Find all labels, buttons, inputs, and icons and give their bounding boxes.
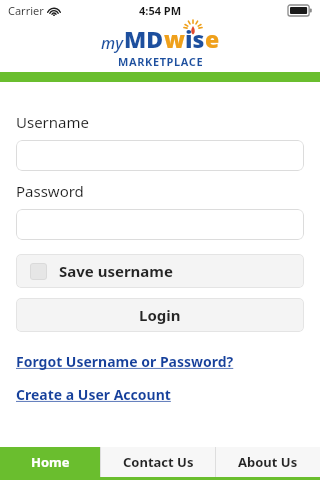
staticText: Create a User Account bbox=[16, 385, 171, 404]
staticText: Username bbox=[16, 112, 89, 132]
staticText: 4:54 PM bbox=[139, 3, 182, 18]
staticText: my bbox=[101, 32, 123, 54]
staticText: Password bbox=[16, 181, 84, 201]
button[interactable] bbox=[16, 140, 304, 171]
staticText: Forgot Username or Password? bbox=[16, 352, 234, 371]
button[interactable]: Create a User Account bbox=[16, 385, 171, 404]
button[interactable]: Contact Us bbox=[101, 447, 215, 477]
staticText: e bbox=[205, 23, 220, 54]
staticText: is bbox=[185, 23, 205, 54]
staticText: Home bbox=[31, 453, 70, 471]
button[interactable]: Login bbox=[16, 298, 304, 332]
staticText: w bbox=[164, 23, 185, 54]
button[interactable]: About Us bbox=[216, 447, 320, 477]
button[interactable]: Save username bbox=[16, 254, 304, 288]
staticText: Carrier bbox=[8, 3, 44, 18]
staticText: Save username bbox=[59, 261, 173, 281]
button[interactable]: Forgot Username or Password? bbox=[16, 352, 234, 371]
staticText: Contact Us bbox=[123, 453, 194, 471]
staticText: MD bbox=[124, 23, 164, 54]
staticText: MARKETPLACE bbox=[118, 54, 204, 69]
staticText: About Us bbox=[238, 453, 298, 471]
staticText: Login bbox=[139, 305, 181, 325]
button[interactable]: Home bbox=[0, 447, 100, 477]
button[interactable] bbox=[16, 209, 304, 240]
